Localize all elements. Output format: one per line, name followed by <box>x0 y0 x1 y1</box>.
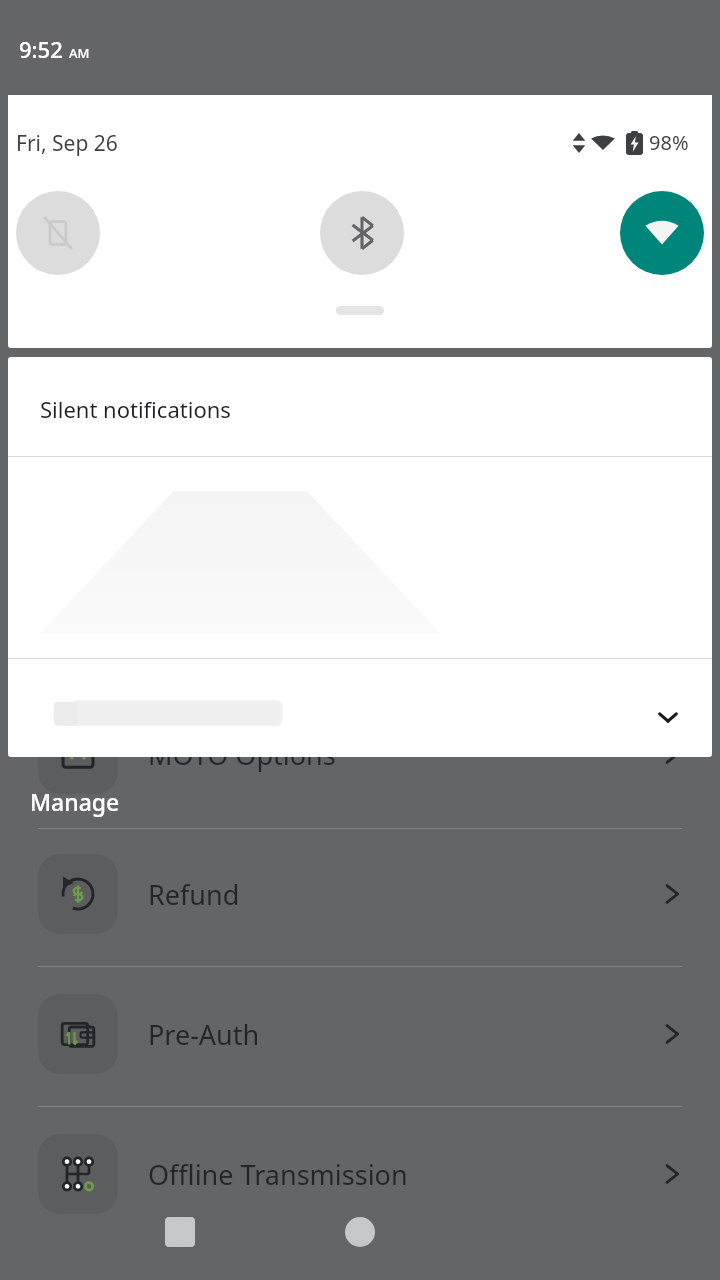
staticText: Silent notifications <box>40 394 231 424</box>
button[interactable]: Wi-Fi <box>620 191 704 275</box>
button[interactable]: Offline Transmission <box>0 1132 720 1216</box>
button[interactable]: Bluetooth <box>320 191 404 275</box>
staticText: Fri, Sep 26 <box>16 129 118 158</box>
button[interactable]: Silent mode <box>16 191 100 275</box>
button[interactable]: Recent apps <box>165 1217 195 1247</box>
button[interactable] <box>8 457 712 658</box>
button[interactable]: Refund <box>0 852 720 936</box>
staticText: MOTO Options <box>148 736 662 773</box>
button[interactable]: MOTO Options <box>0 712 720 796</box>
staticText: Offline Transmission <box>148 1156 662 1193</box>
staticText: Pre-Auth <box>148 1016 662 1053</box>
button[interactable]: Silent notifications <box>8 357 712 456</box>
staticText: 98% <box>649 129 689 156</box>
button[interactable]: Expand <box>642 691 694 743</box>
staticText: AM <box>69 44 90 62</box>
button[interactable]: Expand <box>8 659 712 757</box>
button[interactable]: Home <box>345 1217 375 1247</box>
staticText: Refund <box>148 876 662 913</box>
staticText: 9:52 <box>19 34 63 64</box>
button[interactable]: Pre-Auth <box>0 992 720 1076</box>
staticText: Manage <box>30 786 120 817</box>
